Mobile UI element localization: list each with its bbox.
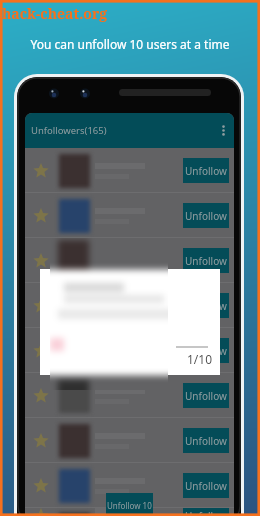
button[interactable]: Unfollow — [25, 418, 234, 463]
button[interactable]: Unfollowers(165) — [25, 113, 234, 148]
button[interactable]: Unfollow — [25, 238, 234, 283]
button[interactable]: Unfollow — [183, 428, 229, 453]
button[interactable]: Unfollow — [25, 328, 234, 373]
staticText: Unfollow — [185, 254, 227, 268]
button[interactable]: Unfollow — [25, 283, 234, 328]
button[interactable]: Unfollow — [183, 248, 229, 273]
staticText: Unfollow 10 — [107, 500, 152, 511]
staticText: Unfollow — [185, 389, 227, 403]
button[interactable]: Unfollow — [183, 383, 229, 408]
staticText: 1/10 — [187, 351, 213, 367]
button[interactable]: Unfollow — [25, 508, 234, 516]
button[interactable]: Unfollow — [25, 148, 234, 193]
staticText: You can unfollow 10 users at a time — [0, 36, 260, 52]
staticText: Unfollow — [185, 164, 227, 178]
staticText: Unfollowers(165) — [31, 124, 107, 137]
button[interactable]: Unfollow — [183, 158, 229, 183]
staticText: Unfollow — [185, 344, 227, 358]
button[interactable]: Unfollow — [183, 203, 229, 228]
button[interactable]: Unfollow — [183, 473, 229, 498]
button[interactable]: Unfollow — [183, 508, 229, 516]
staticText: Unfollow — [185, 209, 227, 223]
button[interactable]: Unfollow — [183, 293, 229, 318]
button[interactable]: Unfollow — [25, 463, 234, 508]
staticText: Unfollow — [185, 479, 227, 493]
button[interactable]: 1/10 — [40, 269, 220, 375]
staticText: Unfollow — [185, 434, 227, 448]
button[interactable]: Unfollow — [183, 338, 229, 363]
button[interactable]: Unfollow — [25, 373, 234, 418]
button[interactable]: More options — [212, 113, 234, 148]
staticText: Unfollow — [185, 299, 227, 313]
button[interactable]: Unfollow 10 — [106, 493, 153, 516]
button[interactable]: Unfollow — [25, 193, 234, 238]
staticText: hack-cheat.org — [2, 4, 108, 23]
staticText: Unfollow — [185, 509, 227, 516]
